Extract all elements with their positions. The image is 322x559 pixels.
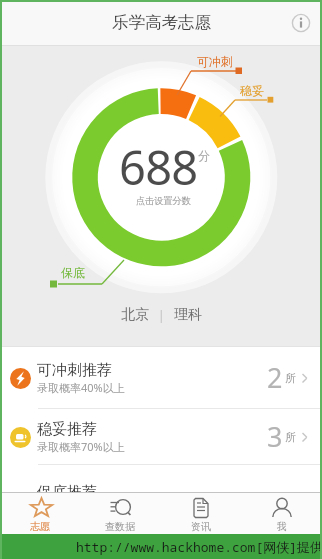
staticText: http://www.hackhome.com[网侠]提供 (76, 538, 322, 556)
staticText: 理科 (174, 306, 202, 324)
button[interactable]: 乐学高考志愿 (0, 0, 322, 45)
staticText: 所 (285, 493, 296, 502)
button[interactable]: 资讯 (160, 493, 241, 534)
staticText: 志愿 (30, 520, 50, 533)
staticText: 23 (252, 493, 283, 502)
button[interactable] (291, 13, 311, 33)
staticText: 所 (285, 430, 296, 444)
button[interactable]: 保底推荐 (0, 483, 322, 492)
button[interactable]: 志愿 (0, 493, 80, 534)
staticText: 稳妥推荐 (37, 420, 97, 439)
button[interactable]: 北京 (0, 306, 322, 324)
staticText: 3 (267, 418, 283, 455)
staticText: 保底 (61, 265, 85, 280)
staticText: 所 (285, 371, 296, 385)
staticText: 可冲刺 (197, 54, 233, 69)
staticText: 录取概率40%以上 (37, 380, 125, 395)
staticText: 录取概率70%以上 (37, 439, 125, 454)
staticText: 我 (277, 520, 287, 533)
staticText: 688 (119, 135, 198, 199)
button[interactable]: 可冲刺推荐 (0, 347, 322, 408)
button[interactable]: 查数据 (80, 493, 160, 534)
staticText: | (158, 307, 165, 323)
staticText: 点击设置分数 (136, 195, 191, 207)
staticText: 2 (267, 359, 283, 396)
staticText: 分 (198, 148, 210, 163)
staticText: 北京 (121, 306, 149, 324)
button[interactable]: 稳妥推荐 (0, 409, 322, 464)
staticText: 查数据 (105, 520, 135, 533)
button[interactable]: 我 (241, 493, 322, 534)
staticText: 保底推荐 (37, 483, 97, 492)
staticText: 资讯 (191, 520, 211, 533)
staticText: 稳妥 (240, 83, 264, 98)
button[interactable] (0, 46, 322, 347)
staticText: 可冲刺推荐 (37, 361, 112, 380)
staticText: 乐学高考志愿 (112, 12, 211, 33)
